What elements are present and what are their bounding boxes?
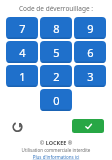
button[interactable]: 3 <box>74 65 106 87</box>
staticText: 5 <box>53 45 60 60</box>
staticText: 9 <box>87 21 94 36</box>
staticText: 7 <box>19 21 26 36</box>
staticText: Code de déverrouillage : <box>6 4 106 13</box>
staticText: 6 <box>87 45 94 60</box>
button[interactable]: 6 <box>74 41 106 63</box>
staticText: 8 <box>53 21 60 36</box>
staticText: © LOCKEE ® <box>6 139 106 146</box>
button[interactable]: 2 <box>40 65 72 87</box>
staticText: 4 <box>19 45 26 60</box>
button[interactable]: 7 <box>6 17 38 39</box>
button[interactable]: 9 <box>74 17 106 39</box>
staticText: 2 <box>53 69 60 84</box>
button[interactable]: 4 <box>6 41 38 63</box>
staticText: 1 <box>19 69 26 84</box>
button[interactable]: 0 <box>40 89 72 111</box>
staticText: Utilisation commerciale interdite <box>6 147 106 153</box>
staticText: 3 <box>87 69 94 84</box>
button[interactable]: 8 <box>40 17 72 39</box>
button[interactable]: 1 <box>6 65 38 87</box>
staticText: 0 <box>53 93 60 108</box>
button[interactable]: 5 <box>40 41 72 63</box>
button[interactable]: Reset code <box>10 119 24 133</box>
button[interactable]: Validate code <box>72 119 104 133</box>
button[interactable]: Plus d'informations ici <box>6 154 106 160</box>
